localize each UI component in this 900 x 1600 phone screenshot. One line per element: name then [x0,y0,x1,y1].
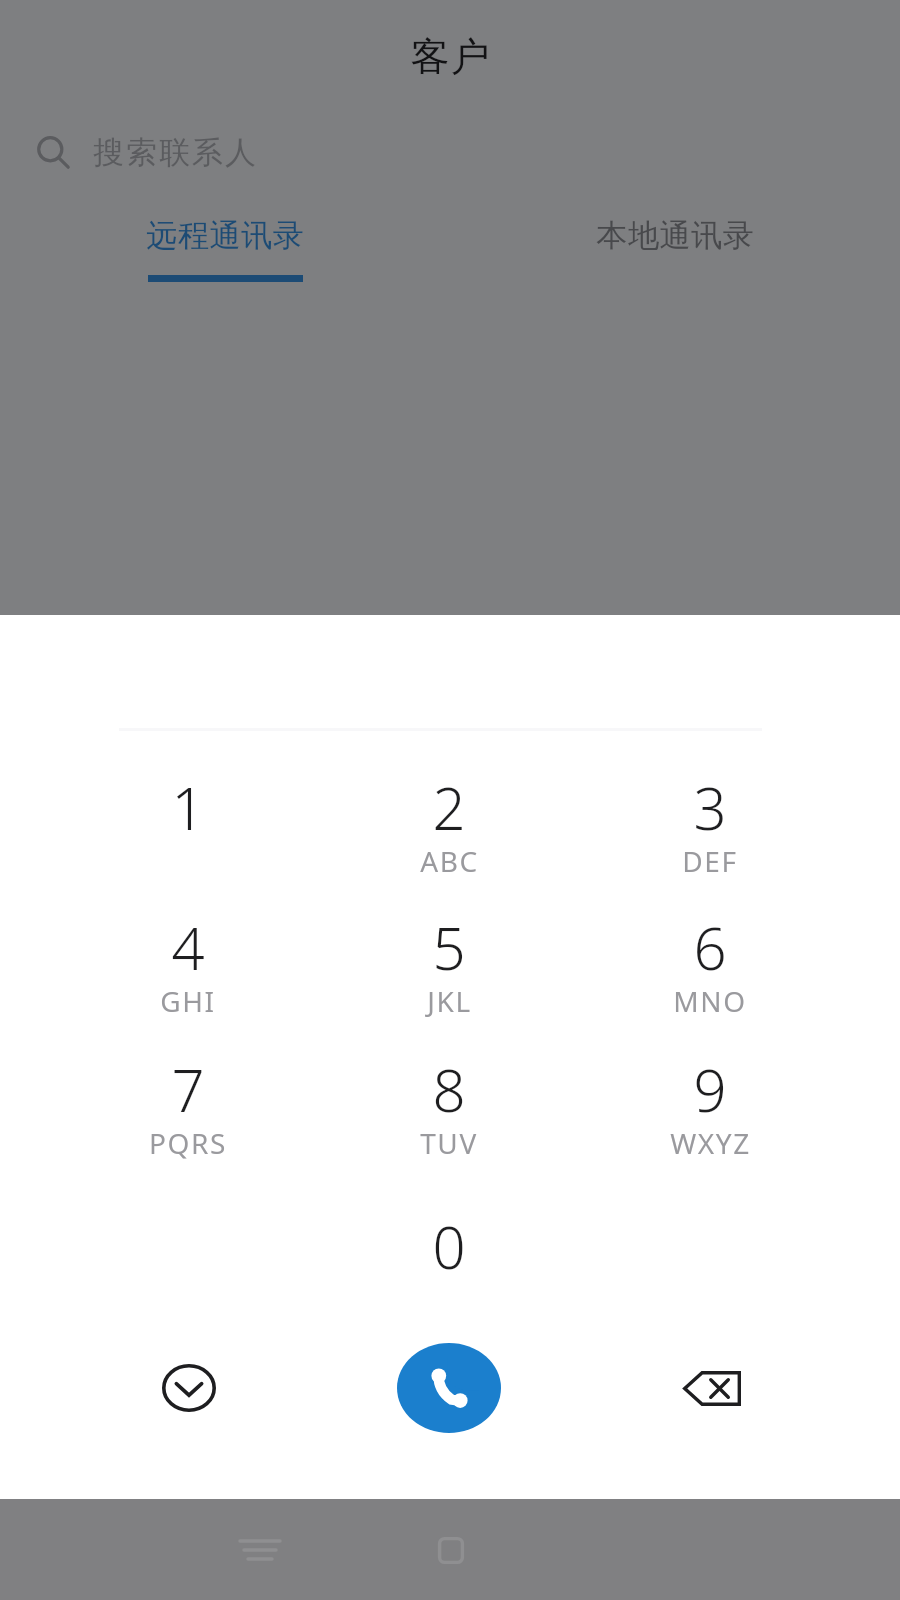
button[interactable]: 1 [88,768,288,898]
staticText: GHI [160,982,216,1020]
button[interactable]: 搜索联系人 [0,123,900,181]
button[interactable]: 4 [88,908,288,1038]
staticText: TUV [420,1124,478,1162]
staticText: 5 [432,908,466,987]
button[interactable]: Call [397,1343,501,1433]
staticText: 搜索联系人 [92,133,257,172]
button[interactable]: 5 [349,908,549,1038]
staticText: 本地通讯录 [596,216,754,255]
staticText: PQRS [149,1124,227,1162]
button[interactable]: Hide keypad [139,1338,239,1438]
staticText: ABC [420,842,479,880]
staticText: 7 [171,1050,205,1129]
staticText: JKL [427,982,472,1020]
button[interactable]: 9 [610,1050,810,1180]
staticText: 0 [432,1207,466,1286]
staticText: 远程通讯录 [146,216,304,255]
staticText: 9 [693,1050,727,1129]
staticText: 8 [432,1050,466,1129]
button[interactable]: 3 [610,768,810,898]
staticText: 3 [693,768,727,847]
staticText: WXYZ [670,1124,751,1162]
staticText: MNO [673,982,747,1020]
button[interactable]: 8 [349,1050,549,1180]
button[interactable]: 远程通讯录 [0,200,450,290]
button[interactable]: Backspace [662,1338,762,1438]
button[interactable]: 0 [349,1207,549,1337]
staticText: 1 [171,768,205,847]
button[interactable]: Recent apps [220,1510,300,1590]
button[interactable]: 本地通讯录 [450,200,900,290]
staticText: DEF [682,842,738,880]
staticText: 客户 [410,32,490,81]
button[interactable]: 2 [349,768,549,898]
staticText: 2 [432,768,466,847]
staticText: 6 [693,908,727,987]
button[interactable]: 7 [88,1050,288,1180]
button[interactable]: 6 [610,908,810,1038]
staticText: 4 [171,908,205,987]
